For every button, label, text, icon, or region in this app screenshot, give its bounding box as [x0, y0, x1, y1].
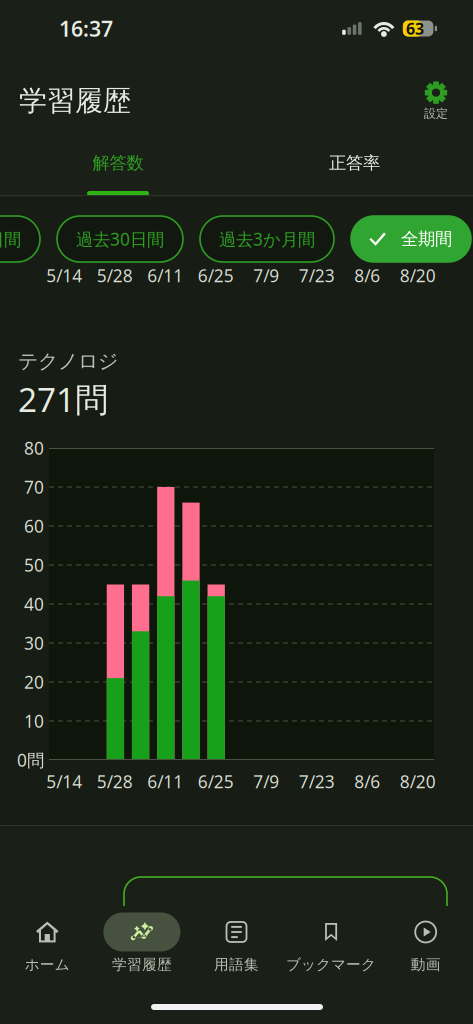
- staticText: 7/23: [299, 264, 335, 287]
- staticText: 学習履歴: [112, 955, 172, 973]
- staticText: 10: [24, 709, 44, 732]
- staticText: 正答率: [329, 152, 380, 174]
- button[interactable]: 動画: [378, 907, 473, 979]
- staticText: 解答数: [92, 152, 143, 174]
- button[interactable]: ブックマーク: [284, 907, 378, 979]
- staticText: 16:37: [59, 14, 113, 43]
- staticText: 全期間: [401, 228, 452, 250]
- staticText: 5/14: [46, 264, 82, 287]
- staticText: 20: [24, 670, 44, 693]
- button[interactable]: 正答率: [236, 150, 473, 196]
- button[interactable]: 過去3か月間: [200, 216, 334, 262]
- button[interactable]: 過去7日間: [0, 216, 40, 262]
- staticText: 50: [24, 553, 44, 576]
- button[interactable]: ホーム: [0, 907, 95, 979]
- staticText: ブックマーク: [286, 955, 376, 973]
- staticText: 5/28: [97, 770, 133, 793]
- staticText: 70: [24, 475, 44, 498]
- staticText: 63: [406, 18, 424, 39]
- staticText: 過去30日間: [76, 227, 164, 250]
- staticText: 動画: [411, 955, 441, 973]
- button[interactable]: 過去30日間: [57, 216, 183, 262]
- staticText: 6/11: [147, 770, 183, 793]
- staticText: 8/6: [354, 264, 380, 287]
- button[interactable]: 設定: [413, 79, 459, 123]
- staticText: 用語集: [214, 955, 259, 973]
- staticText: 過去3か月間: [219, 227, 315, 250]
- staticText: 6/25: [198, 264, 234, 287]
- staticText: 40: [24, 592, 44, 615]
- staticText: 設定: [424, 106, 448, 121]
- button[interactable]: 学習履歴: [95, 907, 189, 979]
- staticText: 7/23: [299, 770, 335, 793]
- staticText: 8/20: [400, 770, 436, 793]
- staticText: ホーム: [25, 955, 70, 973]
- button[interactable]: 用語集: [189, 907, 284, 979]
- staticText: 80: [24, 436, 44, 459]
- staticText: 30: [24, 631, 44, 654]
- staticText: 7/9: [253, 264, 279, 287]
- staticText: 5/14: [46, 770, 82, 793]
- staticText: 271問: [18, 377, 108, 421]
- staticText: 8/20: [400, 264, 436, 287]
- staticText: 7/9: [253, 770, 279, 793]
- staticText: 8/6: [354, 770, 380, 793]
- staticText: 5/28: [97, 264, 133, 287]
- staticText: 0問: [17, 748, 44, 771]
- button[interactable]: 解答数: [0, 150, 236, 196]
- staticText: 学習履歴: [19, 84, 131, 118]
- staticText: 過去7日間: [0, 227, 21, 250]
- button[interactable]: 全期間: [351, 216, 471, 262]
- staticText: 60: [24, 514, 44, 537]
- staticText: テクノロジ: [18, 349, 118, 374]
- staticText: 6/25: [198, 770, 234, 793]
- staticText: 6/11: [147, 264, 183, 287]
